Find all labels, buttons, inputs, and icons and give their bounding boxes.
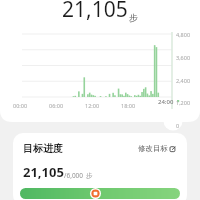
staticText: 4,800	[176, 31, 191, 38]
other: Goal marker	[90, 188, 101, 199]
staticText: 24:00	[158, 98, 174, 106]
staticText: 目标进度	[23, 142, 63, 155]
staticText: 00:00	[13, 102, 28, 109]
staticText: 18:00	[121, 102, 136, 109]
staticText: 3,600	[176, 54, 191, 61]
button[interactable]: Goal marker	[20, 188, 180, 199]
staticText: 1,200	[176, 99, 191, 106]
staticText: 2,400	[176, 77, 191, 84]
staticText: /6,000	[64, 171, 84, 180]
button[interactable]: 修改目标	[137, 143, 177, 154]
staticText: 21,105	[62, 0, 128, 24]
staticText: 06:00	[49, 102, 64, 109]
staticText: 0	[176, 122, 180, 129]
staticText: 步	[86, 172, 93, 180]
staticText: 修改目标	[138, 144, 168, 153]
staticText: 21,105	[23, 163, 64, 181]
staticText: 步	[129, 12, 138, 23]
staticText: 12:00	[85, 102, 100, 109]
